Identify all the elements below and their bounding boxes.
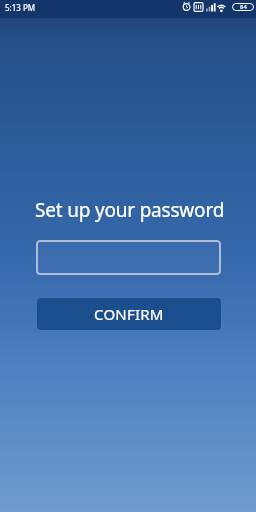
button[interactable] <box>36 240 221 275</box>
staticText: 84 <box>240 3 247 11</box>
button[interactable]: CONFIRM <box>37 298 221 330</box>
staticText: CONFIRM <box>94 304 164 324</box>
staticText: Set up your password <box>35 197 225 223</box>
staticText: 5:13 PM <box>5 2 36 13</box>
